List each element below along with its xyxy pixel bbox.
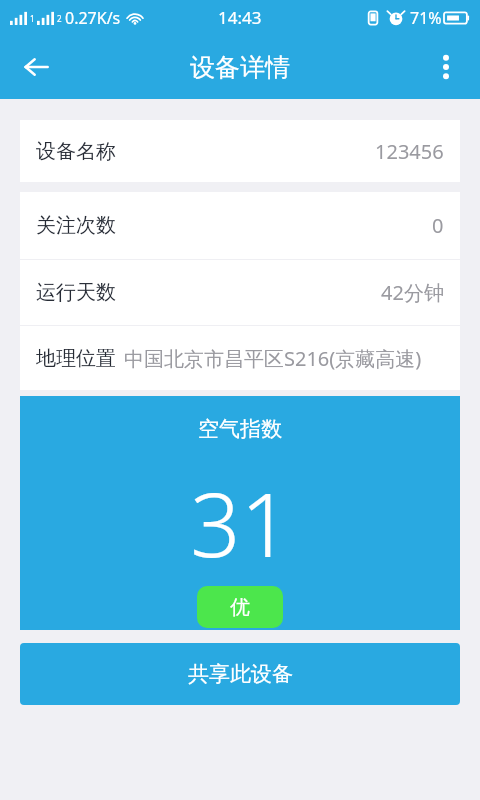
staticText: 0.27K/s [65,7,121,29]
staticText: 优 [230,595,250,620]
staticText: 2 [57,13,62,24]
staticText: 31 [190,463,291,583]
staticText: 空气指数 [198,416,282,442]
button[interactable]: 关注次数 [20,192,460,259]
staticText: 1 [30,13,35,24]
button[interactable]: 共享此设备 [20,643,460,705]
button[interactable]: 地理位置 [20,326,460,390]
staticText: 42分钟 [381,279,444,306]
staticText: 123456 [375,138,444,165]
staticText: 0 [432,212,444,239]
button[interactable]: 设备名称 [20,120,460,182]
button[interactable]: 空气指数 [20,396,460,630]
staticText: 14:43 [218,6,262,29]
staticText: 共享此设备 [188,661,293,687]
button[interactable]: More options [422,43,470,91]
staticText: 关注次数 [36,213,116,238]
staticText: 地理位置 [36,346,116,371]
staticText: 71% [410,7,442,29]
button[interactable]: 运行天数 [20,260,460,325]
staticText: 中国北京市昌平区S216(京藏高速) [124,345,422,372]
staticText: 设备详情 [190,52,290,83]
button[interactable]: Back [12,43,60,91]
staticText: 设备名称 [36,139,116,164]
staticText: 运行天数 [36,280,116,305]
